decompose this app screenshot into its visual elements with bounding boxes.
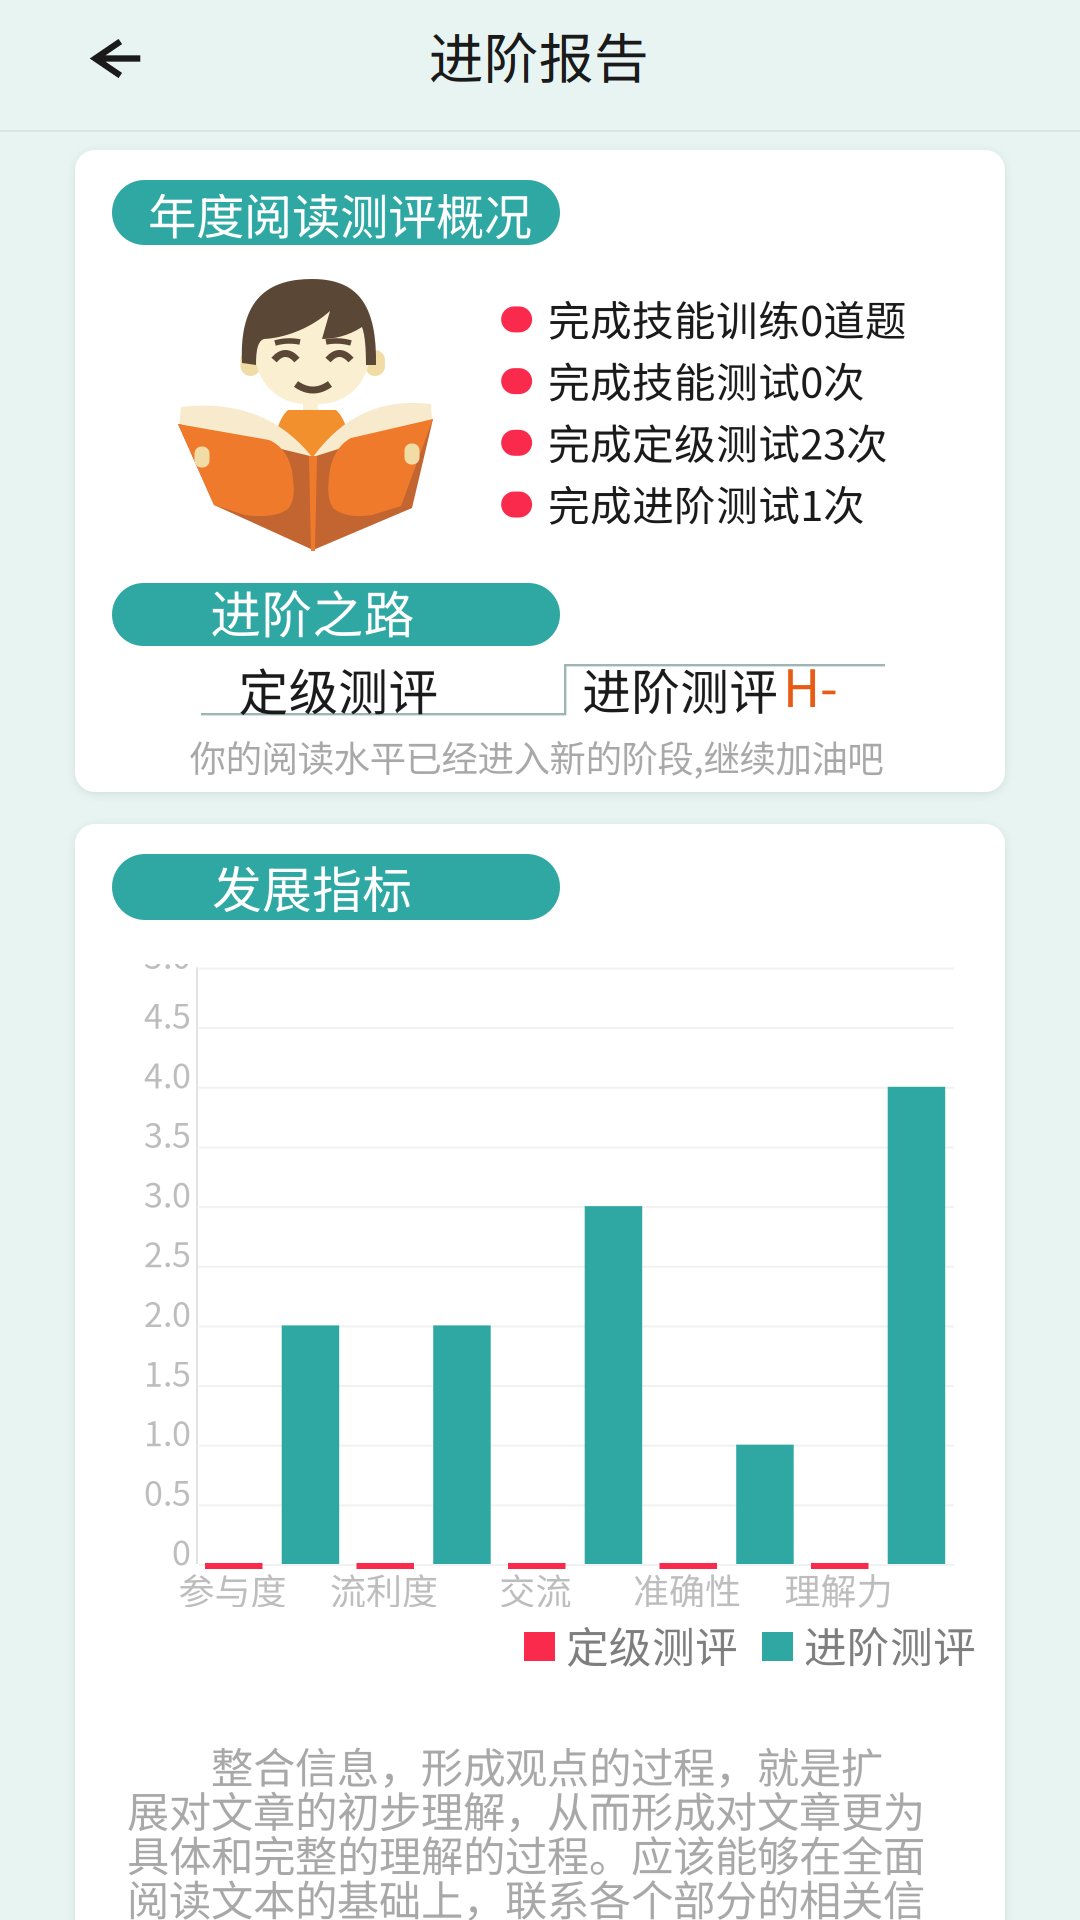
- staticText: 交流: [499, 1563, 571, 1615]
- staticText: 参与度: [178, 1563, 286, 1615]
- staticText: 2.0: [144, 1288, 191, 1337]
- staticText: 进阶报告: [429, 15, 649, 94]
- staticText: 完成定级测试23次: [548, 411, 888, 471]
- staticText: 完成技能测试0次: [548, 350, 865, 410]
- staticText: 进阶测评: [804, 1614, 976, 1675]
- staticText: 0.5: [144, 1466, 191, 1516]
- staticText: 具体和完整的理解的过程。应该能够在全面: [127, 1823, 925, 1884]
- staticText: 进阶之路: [210, 574, 414, 648]
- staticText: 定级测评: [238, 653, 438, 725]
- staticText: 0: [172, 1526, 191, 1575]
- staticText: 1.0: [144, 1407, 191, 1456]
- staticText: 4.5: [144, 989, 191, 1038]
- staticText: 发展指标: [212, 850, 412, 922]
- staticText: 3.0: [144, 1168, 191, 1217]
- staticText: 4.0: [144, 1049, 191, 1098]
- staticText: 完成技能训练0道题: [548, 288, 907, 348]
- button[interactable]: Back: [71, 17, 165, 99]
- staticText: 整合信息，形成观点的过程，就是扩: [127, 1734, 883, 1796]
- staticText: 展对文章的初步理解，从而形成对文章更为: [127, 1779, 925, 1840]
- staticText: 1.5: [144, 1347, 191, 1396]
- staticText: 理解力: [784, 1563, 892, 1615]
- staticText: 准确性: [633, 1563, 741, 1615]
- staticText: 你的阅读水平已经进入新的阶段,继续加油吧: [189, 730, 883, 782]
- staticText: H-: [783, 648, 838, 722]
- staticText: 流利度: [330, 1563, 438, 1615]
- staticText: 3.5: [144, 1109, 191, 1158]
- staticText: 进阶测评: [582, 654, 778, 724]
- staticText: 阅读文本的基础上，联系各个部分的相关信: [127, 1867, 925, 1920]
- staticText: 年度阅读测评概况: [148, 178, 532, 248]
- staticText: 2.5: [144, 1228, 191, 1277]
- staticText: 定级测评: [566, 1614, 738, 1675]
- staticText: 完成进阶测试1次: [548, 473, 865, 533]
- staticText: 5.0: [144, 930, 191, 979]
